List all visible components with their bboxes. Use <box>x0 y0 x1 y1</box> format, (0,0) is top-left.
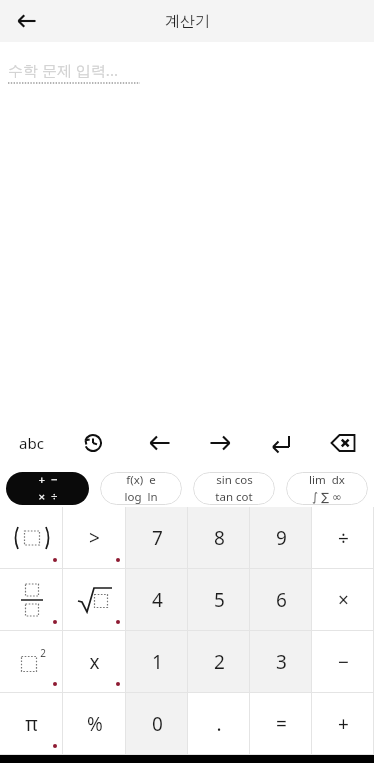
button[interactable]: x <box>63 631 126 692</box>
staticText: x <box>89 649 100 675</box>
button[interactable]: % <box>63 693 126 754</box>
button[interactable]: f(x) e <box>100 472 182 505</box>
button[interactable]: 4 <box>126 569 188 630</box>
staticText: ∫ ∑ ∞ <box>312 489 342 505</box>
staticText: > <box>89 525 100 551</box>
staticText: 0 <box>152 711 163 737</box>
button[interactable]: sin cos <box>193 472 275 505</box>
staticText: 5 <box>214 587 225 613</box>
staticText: 6 <box>276 587 287 613</box>
button[interactable]: . <box>188 693 250 754</box>
button[interactable] <box>0 569 63 630</box>
staticText: 2 <box>40 646 46 660</box>
button[interactable]: − <box>312 631 374 692</box>
button[interactable] <box>63 569 126 630</box>
staticText: + − <box>38 472 58 488</box>
staticText: sin cos <box>216 472 253 488</box>
staticText: × <box>338 587 349 613</box>
staticText: π <box>25 711 38 737</box>
button[interactable]: 6 <box>250 569 312 630</box>
button[interactable]: Enter <box>263 426 297 460</box>
staticText: ÷ <box>338 525 349 551</box>
staticText: 수학 문제 입력... <box>8 60 118 80</box>
button[interactable]: π <box>0 693 63 754</box>
button[interactable]: History <box>76 426 110 460</box>
button[interactable]: Back <box>10 4 44 38</box>
staticText: tan cot <box>215 489 253 505</box>
button[interactable]: 3 <box>250 631 312 692</box>
button[interactable]: + <box>312 693 374 754</box>
button[interactable]: 1 <box>126 631 188 692</box>
button[interactable]: abc <box>10 426 52 460</box>
staticText: % <box>87 711 103 737</box>
staticText: 2 <box>214 649 225 675</box>
button[interactable]: Backspace <box>326 426 360 460</box>
staticText: . <box>216 711 222 737</box>
button[interactable]: 7 <box>126 507 188 568</box>
staticText: 계산기 <box>165 12 210 31</box>
button[interactable]: × <box>312 569 374 630</box>
button[interactable]: ÷ <box>312 507 374 568</box>
staticText: = <box>276 711 287 737</box>
staticText: 1 <box>152 649 163 675</box>
staticText: 7 <box>152 525 163 551</box>
staticText: abc <box>19 433 44 453</box>
button[interactable]: Move left <box>143 426 177 460</box>
staticText: 9 <box>276 525 287 551</box>
button[interactable]: 8 <box>188 507 250 568</box>
button[interactable]: = <box>250 693 312 754</box>
button[interactable]: + − <box>6 472 89 505</box>
button[interactable]: > <box>63 507 126 568</box>
staticText: 4 <box>152 587 163 613</box>
button[interactable]: 2 <box>188 631 250 692</box>
button[interactable]: Move right <box>203 426 237 460</box>
staticText: × ÷ <box>38 489 58 505</box>
staticText: log ln <box>124 489 158 505</box>
button[interactable]: 2 <box>0 631 63 692</box>
button[interactable] <box>0 507 63 568</box>
staticText: 8 <box>214 525 225 551</box>
button[interactable]: lim dx <box>286 472 368 505</box>
staticText: f(x) e <box>126 472 156 488</box>
staticText: 3 <box>276 649 287 675</box>
button[interactable]: 0 <box>126 693 188 754</box>
staticText: + <box>338 711 349 737</box>
staticText: lim dx <box>309 472 345 488</box>
staticText: − <box>338 649 349 675</box>
button[interactable]: 5 <box>188 569 250 630</box>
button[interactable]: 9 <box>250 507 312 568</box>
